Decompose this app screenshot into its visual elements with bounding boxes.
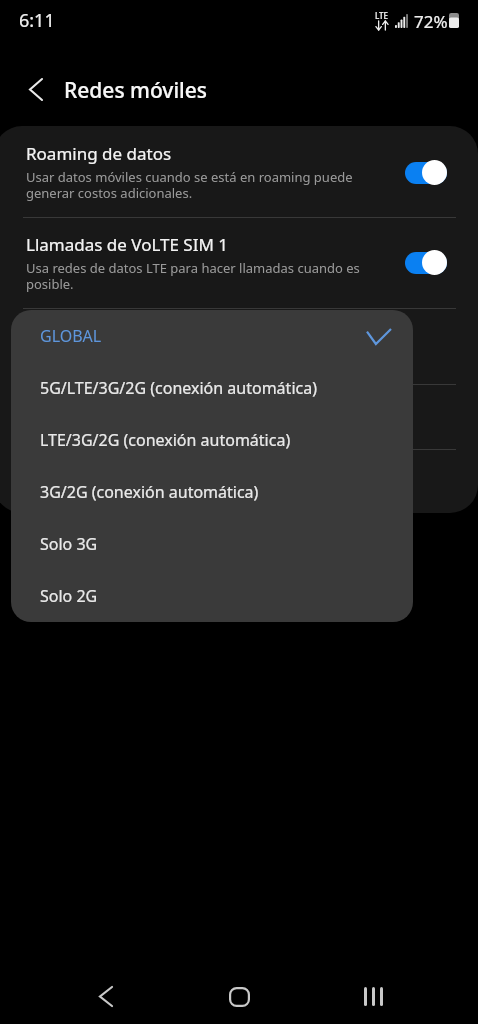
button[interactable]: Solo 3G <box>11 518 413 570</box>
button[interactable]: Roaming de datos <box>0 126 478 217</box>
button[interactable]: Nombres de punto de acceso <box>0 385 478 449</box>
staticText: Operadores de red <box>26 471 177 494</box>
button[interactable]: Recents <box>340 963 407 1024</box>
staticText: Usa redes de datos LTE para hacer llamad… <box>26 259 371 292</box>
button[interactable]: Back <box>13 67 58 112</box>
button[interactable]: Modo de red <box>0 309 478 384</box>
staticText: Roaming de datos <box>26 142 172 165</box>
staticText: 6:11 <box>19 8 55 33</box>
staticText: 5G/LTE/3G/2G (conexión automática) <box>40 377 391 399</box>
staticText: LTE/3G/2G (conexión automática) <box>40 429 391 451</box>
button[interactable]: 5G/LTE/3G/2G (conexión automática) <box>11 362 413 414</box>
staticText: GLOBAL <box>40 325 367 347</box>
button[interactable]: GLOBAL <box>11 310 413 362</box>
button[interactable]: Home <box>206 963 273 1024</box>
button[interactable]: Toggle <box>404 250 447 275</box>
button[interactable]: 3G/2G (conexión automática) <box>11 466 413 518</box>
staticText: Solo 3G <box>40 533 391 555</box>
button[interactable]: Operadores de red <box>0 450 478 513</box>
staticText: LTE <box>375 10 389 21</box>
staticText: Redes móviles <box>64 76 208 105</box>
staticText: Modo de red <box>26 325 129 348</box>
staticText: Solo 2G <box>40 585 391 607</box>
button[interactable]: Back <box>72 963 139 1024</box>
staticText: Llamadas de VoLTE SIM 1 <box>26 233 228 256</box>
staticText: 3G/2G (conexión automática) <box>40 481 391 503</box>
staticText: Usar datos móviles cuando se está en roa… <box>26 168 371 201</box>
button[interactable]: LTE/3G/2G (conexión automática) <box>11 414 413 466</box>
button[interactable]: Toggle <box>404 160 447 185</box>
button[interactable]: Llamadas de VoLTE SIM 1 <box>0 218 478 308</box>
button[interactable]: Solo 2G <box>11 570 413 622</box>
staticText: 72% <box>414 10 448 33</box>
